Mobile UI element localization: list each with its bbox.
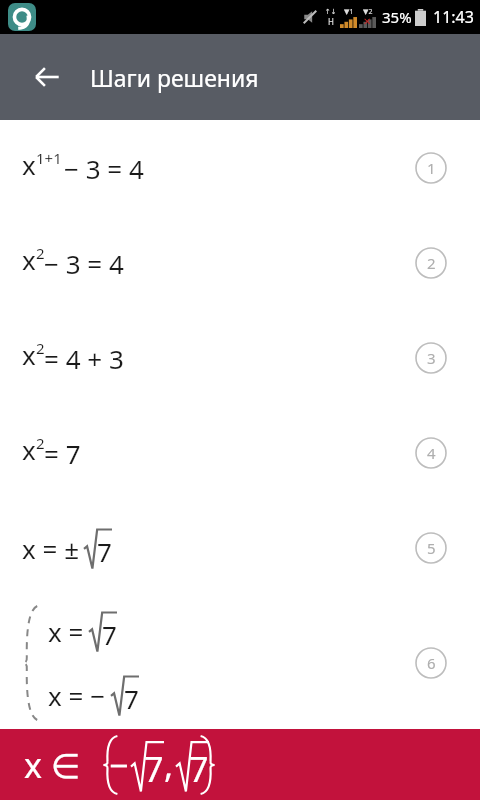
staticText: 11:43 [433, 6, 474, 28]
button[interactable]: x = ± [0, 500, 480, 595]
button[interactable]: Back [26, 56, 68, 98]
staticText: 7 [144, 746, 164, 792]
staticText: − 3 = 4 [44, 246, 124, 281]
staticText: x [22, 337, 36, 372]
staticText: 7 [97, 534, 112, 569]
staticText: ↑↓ [325, 8, 337, 16]
staticText: 4 [427, 443, 436, 463]
staticText: 1 [427, 158, 436, 178]
staticText: 5 [427, 538, 436, 558]
staticText: ▼2 [363, 7, 373, 17]
staticText: x [22, 242, 36, 277]
staticText: ✕ [363, 16, 372, 28]
staticText: 2 [36, 433, 45, 453]
staticText: 1+1 [36, 148, 62, 168]
staticText: x = [48, 614, 84, 649]
staticText: H [328, 16, 334, 27]
button[interactable]: x [0, 215, 480, 310]
staticText: 35% [382, 7, 412, 27]
staticText: 7 [102, 617, 117, 652]
staticText: 2 [36, 243, 45, 263]
staticText: x ∈ [24, 742, 81, 788]
staticText: − [109, 742, 129, 788]
staticText: x = ± [22, 531, 80, 566]
staticText: = 7 [44, 436, 81, 471]
button[interactable]: x [0, 120, 480, 215]
staticText: x = − [48, 678, 106, 713]
staticText: 3 [427, 348, 436, 368]
staticText: Шаги решения [90, 62, 259, 93]
staticText: 7 [189, 746, 209, 792]
staticText: x [22, 432, 36, 467]
staticText: 2 [36, 338, 45, 358]
button[interactable]: x ∈ [0, 729, 480, 800]
staticText: 7 [124, 681, 139, 716]
staticText: 2 [427, 253, 436, 273]
button[interactable]: x [0, 405, 480, 500]
button[interactable]: x = [0, 595, 480, 730]
staticText: , [164, 742, 174, 788]
staticText: ▼1 [344, 7, 354, 17]
staticText: x [22, 147, 36, 182]
staticText: = 4 + 3 [44, 341, 124, 376]
button[interactable]: x [0, 310, 480, 405]
staticText: 6 [427, 653, 436, 673]
staticText: − 3 = 4 [64, 151, 144, 186]
